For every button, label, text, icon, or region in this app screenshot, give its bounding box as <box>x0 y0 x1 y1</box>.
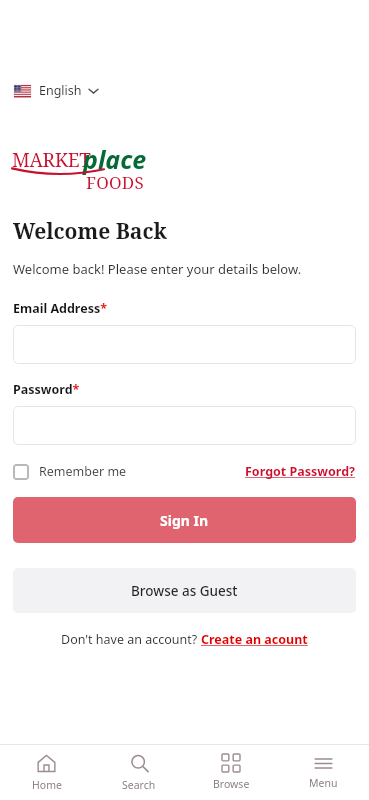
staticText: place <box>83 142 147 176</box>
button[interactable]: Sign In <box>13 497 356 543</box>
staticText: Search <box>122 778 156 792</box>
button[interactable] <box>13 325 356 364</box>
staticText: Browse as Guest <box>131 582 238 600</box>
button[interactable]: Forgot Password? <box>245 463 356 480</box>
staticText: Password* <box>13 381 80 398</box>
staticText: Welcome back! Please enter your details … <box>13 260 302 278</box>
staticText: Email Address* <box>13 300 107 317</box>
staticText: Browse <box>213 777 250 791</box>
staticText: Sign In <box>160 511 209 530</box>
staticText: Don't have an account? <box>61 631 201 648</box>
staticText: MARKET <box>12 147 91 173</box>
button[interactable]: English <box>14 82 102 99</box>
button[interactable]: Browse <box>185 745 277 800</box>
button[interactable]: Don't have an account? <box>61 631 308 648</box>
button[interactable]: Search <box>93 745 185 800</box>
staticText: Forgot Password? <box>245 463 356 480</box>
button[interactable] <box>13 406 356 445</box>
staticText: Home <box>32 778 62 792</box>
button[interactable]: Home <box>0 745 93 800</box>
staticText: Remember me <box>39 463 127 480</box>
staticText: FOODS <box>86 171 144 194</box>
staticText: Welcome Back <box>13 217 167 246</box>
staticText: Create an acount <box>201 631 308 648</box>
button[interactable]: Browse as Guest <box>13 568 356 613</box>
staticText: English <box>39 82 82 99</box>
button[interactable]: Remember me <box>13 463 127 480</box>
button[interactable]: Menu <box>277 745 369 800</box>
staticText: Menu <box>309 776 338 790</box>
